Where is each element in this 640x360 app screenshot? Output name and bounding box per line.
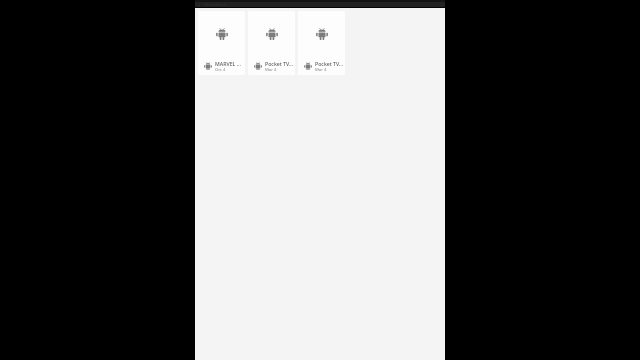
staticText: MARVEL ... (215, 60, 241, 67)
staticText: Mar 4 (315, 67, 327, 73)
button[interactable]: MARVEL ... (198, 11, 245, 75)
staticText: Mar 4 (265, 67, 277, 73)
staticText: Pocket TV... (315, 60, 344, 67)
button[interactable]: Pocket TV... (298, 11, 345, 75)
staticText: Pocket TV... (265, 60, 294, 67)
staticText: Oct 4 (215, 67, 226, 73)
button[interactable]: Pocket TV... (248, 11, 295, 75)
